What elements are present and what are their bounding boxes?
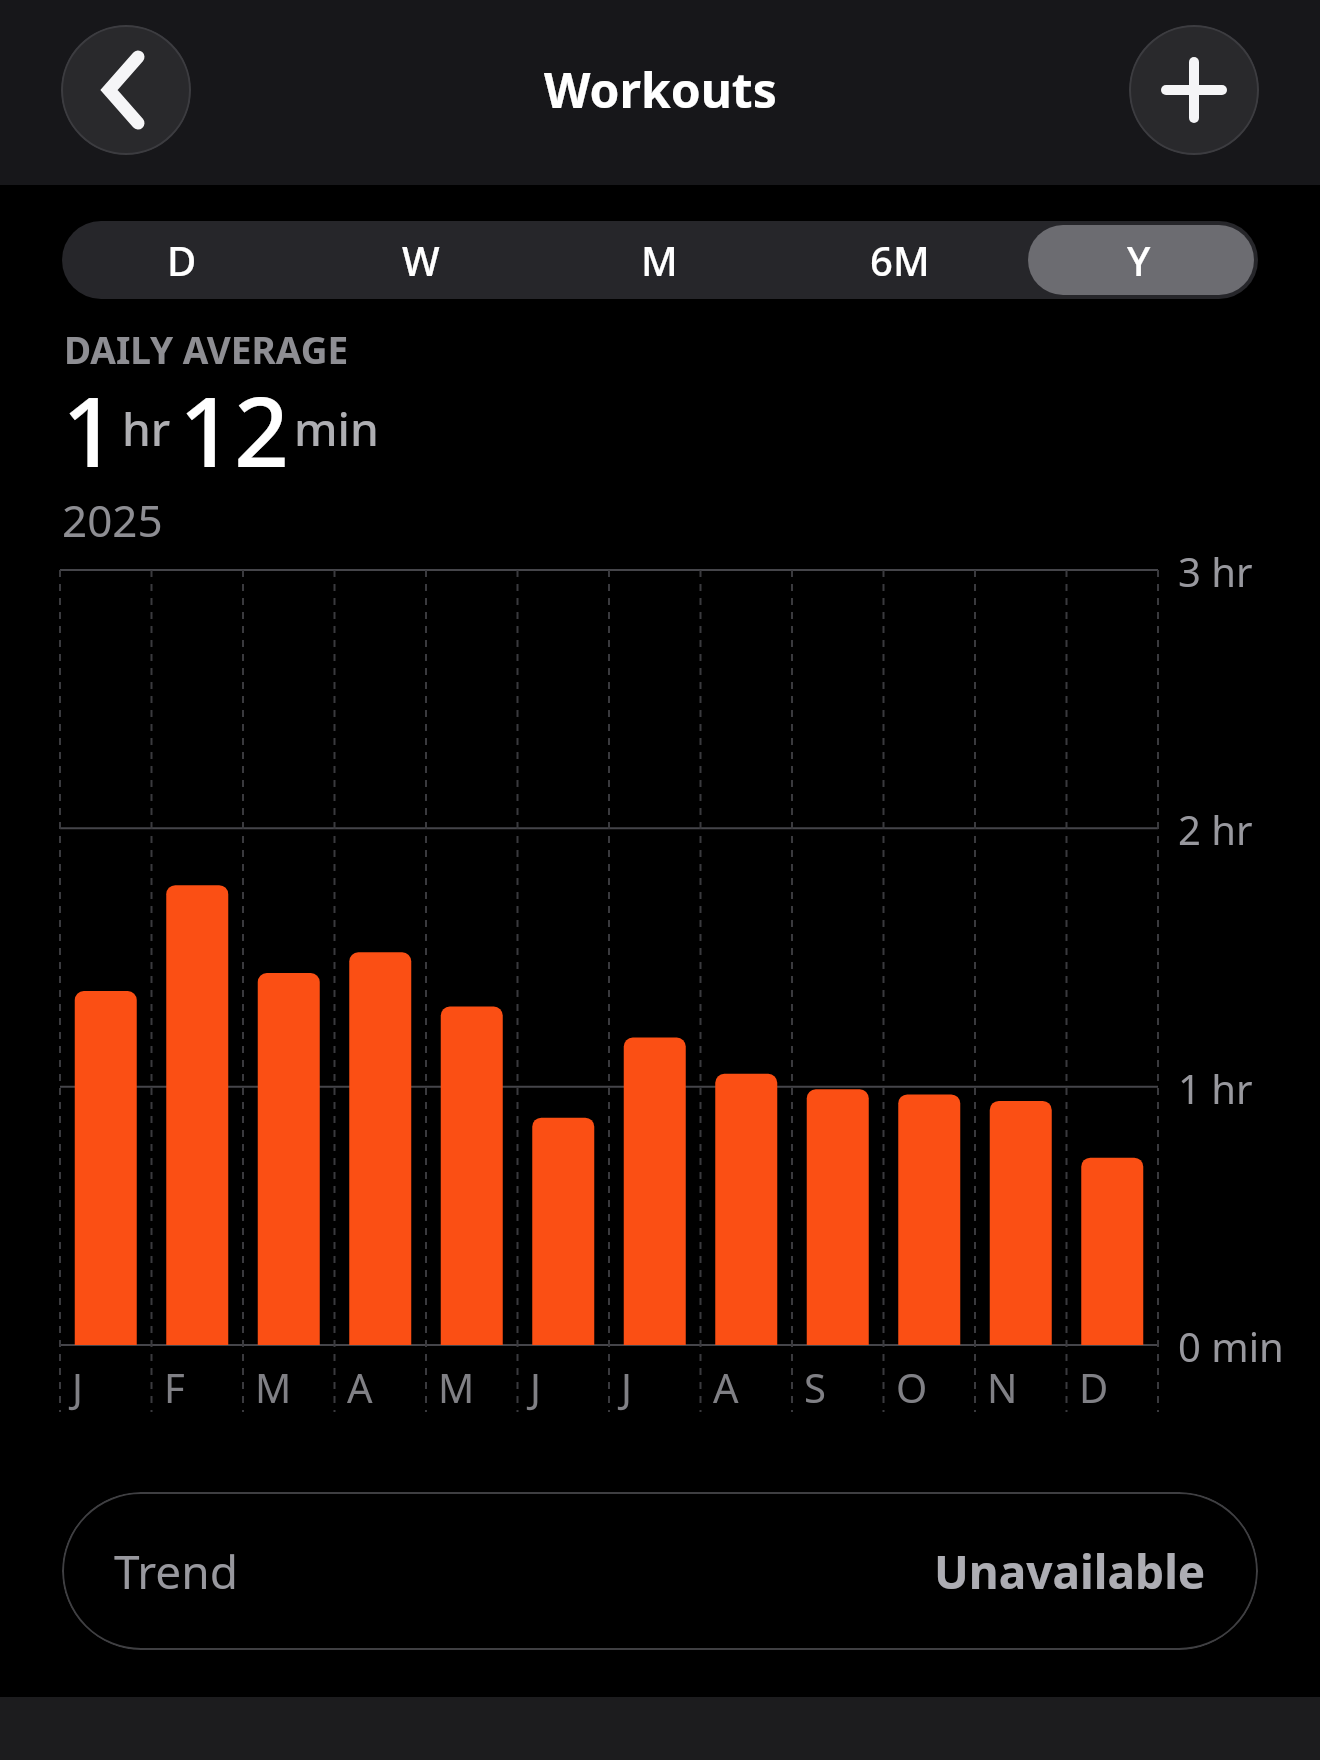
button[interactable]: [61, 25, 191, 155]
staticText: M: [255, 1360, 292, 1414]
staticText: S: [804, 1360, 826, 1414]
staticText: M: [438, 1360, 475, 1414]
button[interactable]: Trend: [62, 1492, 1258, 1650]
button[interactable]: W: [301, 221, 540, 299]
staticText: Trend: [114, 1540, 239, 1603]
staticText: 2025: [62, 490, 163, 550]
staticText: A: [713, 1360, 739, 1414]
staticText: min: [294, 397, 379, 460]
button[interactable]: D: [62, 221, 301, 299]
staticText: J: [621, 1360, 632, 1414]
staticText: F: [164, 1360, 185, 1414]
staticText: hr: [122, 397, 171, 460]
staticText: Workouts: [544, 57, 777, 122]
staticText: J: [72, 1360, 83, 1414]
staticText: Unavailable: [934, 1540, 1206, 1603]
staticText: W: [402, 233, 440, 287]
button[interactable]: M: [540, 221, 779, 299]
button[interactable]: Y: [1019, 221, 1258, 299]
staticText: D: [167, 233, 197, 287]
staticText: 0 min: [1178, 1319, 1284, 1373]
staticText: 3 hr: [1178, 544, 1253, 598]
button[interactable]: 6M: [780, 221, 1019, 299]
button[interactable]: [1129, 25, 1259, 155]
staticText: 1: [62, 364, 117, 468]
staticText: 1 hr: [1178, 1061, 1253, 1115]
staticText: M: [641, 233, 678, 287]
staticText: N: [987, 1360, 1018, 1414]
staticText: Y: [1127, 233, 1151, 287]
staticText: 6M: [870, 233, 930, 287]
staticText: 2 hr: [1178, 802, 1253, 856]
staticText: O: [896, 1360, 928, 1414]
staticText: D: [1079, 1360, 1109, 1414]
staticText: A: [347, 1360, 373, 1414]
staticText: J: [530, 1360, 541, 1414]
staticText: 12: [179, 364, 289, 468]
staticText: DAILY AVERAGE: [64, 324, 349, 374]
